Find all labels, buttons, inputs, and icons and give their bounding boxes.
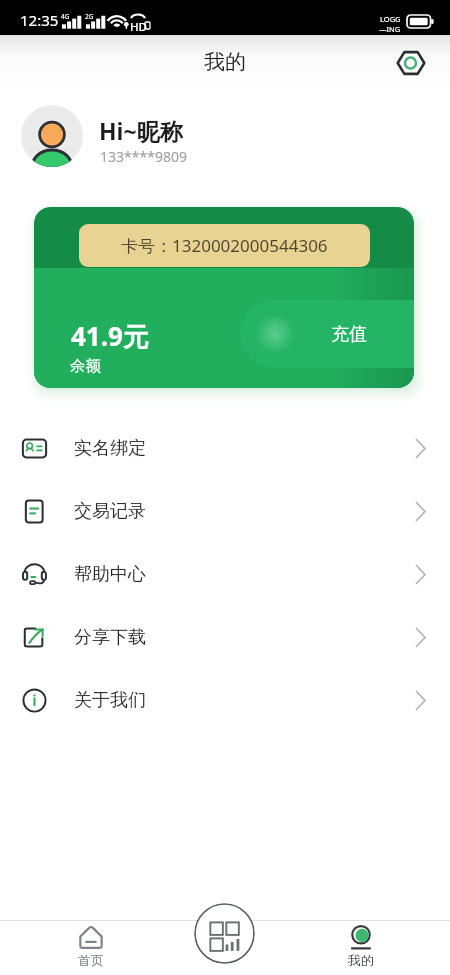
staticText: 卡号：1320002000544306 [121, 234, 328, 257]
button[interactable]: Settings [391, 43, 430, 82]
button[interactable]: 实名绑定 [0, 417, 450, 480]
staticText: 关于我们 [74, 689, 146, 712]
staticText: 充值 [331, 323, 367, 346]
button[interactable]: 分享下载 [0, 606, 450, 669]
staticText: 交易记录 [74, 500, 146, 523]
button[interactable]: 帮助中心 [0, 543, 450, 606]
staticText: 余额 [70, 356, 101, 376]
staticText: 133****9809 [100, 147, 187, 166]
staticText: Hi~昵称 [99, 115, 183, 146]
staticText: —ING [379, 24, 401, 34]
button[interactable]: 我的 [328, 918, 393, 975]
staticText: 2G [85, 12, 94, 21]
staticText: HD [130, 19, 148, 35]
button[interactable]: Hi~昵称 [0, 99, 450, 173]
staticText: 首页 [78, 952, 104, 968]
staticText: 帮助中心 [74, 563, 146, 586]
staticText: 41.9元 [71, 318, 149, 354]
staticText: 12:35 [20, 10, 59, 30]
staticText: 分享下载 [74, 626, 146, 649]
button[interactable]: 交易记录 [0, 480, 450, 543]
staticText: 我的 [348, 952, 374, 968]
staticText: LOGG [380, 14, 401, 24]
button[interactable]: 首页 [58, 918, 123, 975]
button[interactable]: Scan QR code [194, 903, 255, 964]
staticText: 我的 [204, 49, 246, 75]
staticText: 4G [61, 12, 70, 21]
button[interactable]: 关于我们 [0, 669, 450, 732]
button[interactable]: 充值 [240, 300, 414, 368]
staticText: 实名绑定 [74, 437, 146, 460]
